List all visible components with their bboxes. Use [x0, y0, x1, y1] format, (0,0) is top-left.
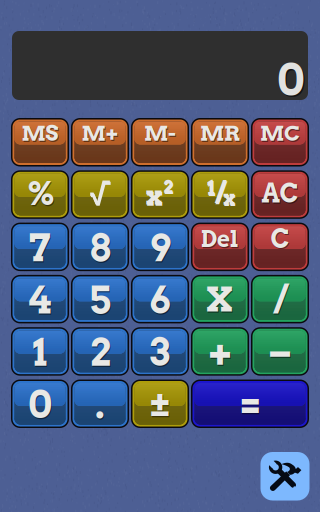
button[interactable]: AC — [251, 170, 309, 219]
staticText: 1 — [207, 175, 215, 200]
staticText: M+ — [81, 120, 118, 146]
button[interactable]: 0 — [11, 379, 69, 428]
button[interactable]: ± — [131, 379, 189, 428]
staticText: 2 — [163, 176, 173, 197]
button[interactable]: = — [191, 379, 309, 428]
button[interactable]: X — [191, 275, 249, 323]
staticText: Del — [202, 226, 240, 254]
staticText: . — [96, 383, 106, 428]
staticText: 5 — [89, 278, 111, 323]
staticText: − — [269, 328, 293, 377]
staticText: 4 — [29, 278, 51, 323]
button[interactable]: 4 — [11, 275, 69, 323]
staticText: 0 — [278, 55, 305, 107]
staticText: C — [270, 223, 289, 254]
staticText: 1 — [208, 177, 216, 201]
staticText: 7 — [29, 225, 51, 270]
staticText: 8 — [90, 226, 112, 272]
staticText: x — [223, 185, 235, 210]
button[interactable]: 1 — [11, 327, 69, 376]
staticText: X — [207, 279, 234, 321]
button[interactable]: 2 — [71, 327, 129, 376]
staticText: 2 — [164, 177, 174, 198]
button[interactable]: Settings — [260, 452, 309, 500]
button[interactable]: MR — [191, 118, 249, 166]
staticText: MR — [201, 122, 241, 147]
staticText: M+ — [82, 122, 119, 147]
button[interactable]: MC — [251, 118, 309, 166]
staticText: x — [146, 179, 163, 213]
staticText: 4 — [30, 279, 52, 324]
staticText: 3 — [151, 331, 171, 376]
staticText: + — [209, 328, 233, 377]
staticText: 3 — [150, 330, 170, 375]
button[interactable]: + — [191, 327, 249, 376]
staticText: x — [224, 187, 236, 211]
button[interactable]: 8 — [71, 223, 129, 271]
staticText: MS — [22, 122, 59, 147]
staticText: 0 — [29, 383, 53, 428]
button[interactable]: M- — [131, 118, 189, 166]
staticText: 2 — [89, 330, 110, 375]
staticText: M- — [144, 120, 176, 146]
button[interactable]: 7 — [11, 223, 69, 271]
staticText: M- — [145, 122, 177, 147]
button[interactable]: 5 — [71, 275, 129, 323]
staticText: = — [241, 381, 260, 429]
staticText: MC — [260, 120, 300, 146]
staticText: x — [145, 178, 162, 211]
button[interactable]: 6 — [131, 275, 189, 323]
staticText: MR — [200, 120, 240, 146]
staticText: . — [95, 382, 105, 427]
staticText: Del — [201, 225, 239, 253]
staticText: 6 — [149, 278, 170, 323]
staticText: MS — [21, 120, 58, 146]
staticText: ± — [149, 383, 170, 425]
staticText: 5 — [90, 279, 112, 324]
button[interactable]: − — [251, 327, 309, 376]
staticText: = — [240, 380, 259, 428]
staticText: ± — [150, 384, 171, 426]
staticText: 0 — [28, 382, 52, 427]
staticText: 9 — [149, 225, 170, 270]
staticText: % — [26, 175, 55, 214]
staticText: + — [208, 327, 232, 376]
staticText: / — [214, 175, 226, 210]
staticText: 7 — [30, 226, 52, 272]
staticText: − — [268, 327, 292, 376]
staticText: / — [215, 176, 227, 211]
staticText: / — [272, 275, 288, 323]
staticText: 1 — [33, 331, 48, 376]
staticText: 1 — [32, 330, 47, 375]
staticText: C — [271, 225, 290, 255]
button[interactable] — [71, 170, 129, 219]
staticText: 2 — [90, 331, 111, 376]
staticText: AC — [261, 178, 298, 209]
staticText: AC — [262, 179, 299, 210]
staticText: 8 — [89, 225, 111, 270]
button[interactable]: % — [11, 170, 69, 219]
button[interactable]: 3 — [131, 327, 189, 376]
button[interactable]: M+ — [71, 118, 129, 166]
staticText: / — [273, 276, 289, 324]
staticText: MC — [261, 122, 301, 147]
staticText: 6 — [150, 279, 171, 324]
button[interactable]: . — [71, 379, 129, 428]
staticText: 9 — [150, 226, 171, 272]
button[interactable]: MS — [11, 118, 69, 166]
button[interactable]: C — [251, 223, 309, 271]
button[interactable]: 9 — [131, 223, 189, 271]
button[interactable]: / — [251, 275, 309, 323]
button[interactable]: Del — [191, 223, 249, 271]
button[interactable]: 1 — [191, 170, 249, 219]
button[interactable]: x — [131, 170, 189, 219]
staticText: X — [206, 278, 233, 320]
staticText: 0 — [277, 54, 304, 105]
staticText: % — [25, 174, 54, 213]
